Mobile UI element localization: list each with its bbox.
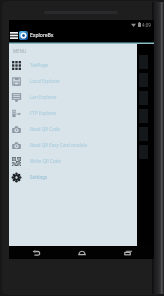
button[interactable]: Recents <box>121 246 135 259</box>
staticText: Settings <box>30 174 48 180</box>
staticText: MENU <box>13 48 27 54</box>
button[interactable]: Local Explorer <box>9 73 137 89</box>
button[interactable]: Home <box>75 246 89 259</box>
button[interactable]: Read QR Easy Card module <box>9 137 137 153</box>
button[interactable]: TabPage <box>9 57 137 73</box>
staticText: ExploreBx <box>30 32 54 39</box>
button[interactable]: Lan Explorer <box>9 89 137 105</box>
button[interactable]: Write QR Code <box>9 153 137 169</box>
staticText: 4:09 <box>142 22 151 28</box>
staticText: Local Explorer <box>30 78 60 84</box>
staticText: Read QR Code <box>30 126 61 132</box>
button[interactable]: Open navigation drawer <box>9 29 18 42</box>
button[interactable]: FTP Explorer <box>9 105 137 121</box>
staticText: Lan Explorer <box>30 94 57 100</box>
staticText: Write QR Code <box>30 158 61 164</box>
button[interactable]: Back <box>29 246 43 259</box>
button[interactable]: Read QR Code <box>9 121 137 137</box>
button[interactable]: Settings <box>9 169 137 185</box>
staticText: TabPage <box>30 62 48 68</box>
staticText: Read QR Easy Card module <box>30 142 88 148</box>
staticText: FTP Explorer <box>30 110 57 116</box>
